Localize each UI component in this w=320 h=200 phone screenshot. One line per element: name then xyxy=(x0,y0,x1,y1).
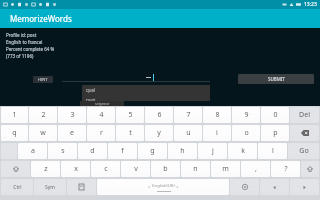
button[interactable]: quiz xyxy=(82,115,210,125)
button[interactable]: Ctrl xyxy=(1,179,33,195)
staticText: quoi xyxy=(86,97,96,103)
staticText: 13:23 xyxy=(304,1,317,8)
staticText: , xyxy=(255,164,257,174)
button[interactable]: k xyxy=(228,143,257,159)
button[interactable]: 8 xyxy=(203,107,231,123)
button[interactable]: quel xyxy=(82,85,210,95)
button[interactable]: 2 xyxy=(29,107,57,123)
button[interactable]: v xyxy=(121,161,150,177)
button[interactable]: c xyxy=(91,161,120,177)
staticText: e xyxy=(70,128,74,138)
button[interactable]: 5 xyxy=(116,107,144,123)
button[interactable]: Change language xyxy=(67,179,96,195)
button[interactable]: w xyxy=(29,125,57,141)
button[interactable]: g xyxy=(138,143,167,159)
staticText: v xyxy=(134,164,138,174)
button[interactable]: Move right xyxy=(290,179,319,195)
button[interactable]: i xyxy=(203,125,231,141)
button[interactable]: Shift xyxy=(301,161,319,177)
staticText: ▸ xyxy=(175,184,179,189)
button[interactable]: Sym xyxy=(34,179,66,195)
staticText: enseigner xyxy=(86,107,108,113)
button[interactable]: Emoji xyxy=(230,179,259,195)
button[interactable]: q xyxy=(1,125,28,141)
button[interactable]: 7 xyxy=(174,107,202,123)
button[interactable]: ◂ xyxy=(97,179,229,195)
button[interactable]: n xyxy=(181,161,210,177)
staticText: l xyxy=(272,146,274,156)
staticText: 0 xyxy=(273,110,278,120)
button[interactable]: y xyxy=(145,125,173,141)
staticText: 3 xyxy=(70,110,75,120)
button[interactable]: seigneur xyxy=(82,125,210,135)
button[interactable]: MemorizeWords xyxy=(0,9,320,28)
button[interactable]: quoi xyxy=(82,95,210,105)
staticText: HINT xyxy=(38,77,48,82)
staticText: 1 xyxy=(12,110,17,120)
button[interactable]: , xyxy=(241,161,270,177)
button[interactable]: Go xyxy=(288,143,319,159)
button[interactable]: j xyxy=(198,143,227,159)
staticText: MemorizeWords xyxy=(10,13,72,24)
button[interactable]: SUBMIT xyxy=(238,74,314,84)
staticText: SUBMIT xyxy=(268,76,285,82)
button[interactable]: b xyxy=(151,161,180,177)
button[interactable]: ? xyxy=(271,161,300,177)
button[interactable]: l xyxy=(258,143,287,159)
staticText: English(UK) xyxy=(152,183,175,189)
staticText: ? xyxy=(284,164,288,174)
staticText: 8 xyxy=(215,110,220,120)
staticText: 4 xyxy=(99,110,104,120)
button[interactable]: e xyxy=(58,125,86,141)
button[interactable]: HINT xyxy=(33,76,53,83)
button[interactable]: 3 xyxy=(58,107,86,123)
button[interactable]: r xyxy=(87,125,115,141)
staticText: Percent complete 64 % xyxy=(6,46,55,52)
staticText: z xyxy=(44,164,48,174)
staticText: English to francai xyxy=(6,39,43,45)
button[interactable]: m xyxy=(211,161,240,177)
button[interactable]: Backspace xyxy=(290,125,319,141)
button[interactable]: a xyxy=(18,143,47,159)
staticText: Profile id: post xyxy=(6,32,37,38)
button[interactable]: h xyxy=(168,143,197,159)
button[interactable]: 0 xyxy=(261,107,289,123)
staticText: b xyxy=(163,164,168,174)
staticText: w xyxy=(40,128,46,138)
staticText: g xyxy=(150,146,155,156)
staticText: c xyxy=(104,164,108,174)
button[interactable]: o xyxy=(232,125,260,141)
staticText: j xyxy=(212,146,214,156)
button[interactable]: s xyxy=(48,143,77,159)
staticText: q xyxy=(12,128,17,138)
button[interactable]: 4 xyxy=(87,107,115,123)
button[interactable]: seigneur xyxy=(80,101,124,106)
staticText: a xyxy=(31,146,35,156)
button[interactable]: p xyxy=(261,125,289,141)
button[interactable]: 6 xyxy=(145,107,173,123)
staticText: x xyxy=(74,164,78,174)
staticText: 6 xyxy=(157,110,162,120)
button[interactable]: u xyxy=(174,125,202,141)
staticText: s xyxy=(61,146,65,156)
button[interactable]: Del xyxy=(290,107,319,123)
button[interactable]: x xyxy=(61,161,90,177)
staticText: 2 xyxy=(41,110,46,120)
staticText: r xyxy=(100,128,103,138)
staticText: t xyxy=(129,128,132,138)
button[interactable]: 9 xyxy=(232,107,260,123)
staticText: o xyxy=(244,128,249,138)
button[interactable]: enseigner xyxy=(82,105,210,115)
button[interactable]: 1 xyxy=(1,107,28,123)
staticText: i xyxy=(216,128,218,138)
button[interactable]: f xyxy=(108,143,137,159)
staticText: Ctrl xyxy=(13,184,22,191)
staticText: n xyxy=(193,164,198,174)
button[interactable]: d xyxy=(78,143,107,159)
button[interactable]: Move left xyxy=(260,179,289,195)
button[interactable]: t xyxy=(116,125,144,141)
staticText: 5 xyxy=(128,110,133,120)
button[interactable]: Shift xyxy=(1,161,30,177)
button[interactable]: z xyxy=(31,161,60,177)
